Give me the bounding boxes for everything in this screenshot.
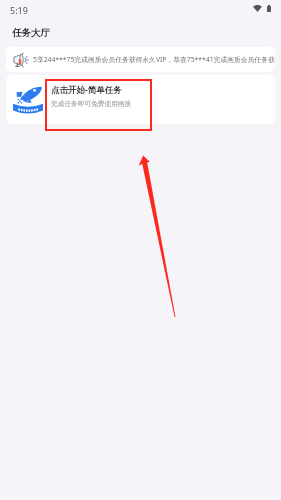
button[interactable]: 点击开始-简单任务 (6, 75, 275, 124)
staticText: 5:19 (10, 4, 28, 16)
staticText: 5享244***75完成画质会员任务获得永久VIP，恭喜75***41完成画质会… (33, 55, 275, 64)
staticText: 任务大厅 (12, 27, 50, 39)
staticText: 点击开始-简单任务 (51, 84, 122, 96)
button[interactable]: 5享244***75完成画质会员任务获得永久VIP，恭喜75***41完成画质会… (6, 47, 275, 72)
staticText: 完成任务即可免费使用画质 (51, 100, 132, 108)
